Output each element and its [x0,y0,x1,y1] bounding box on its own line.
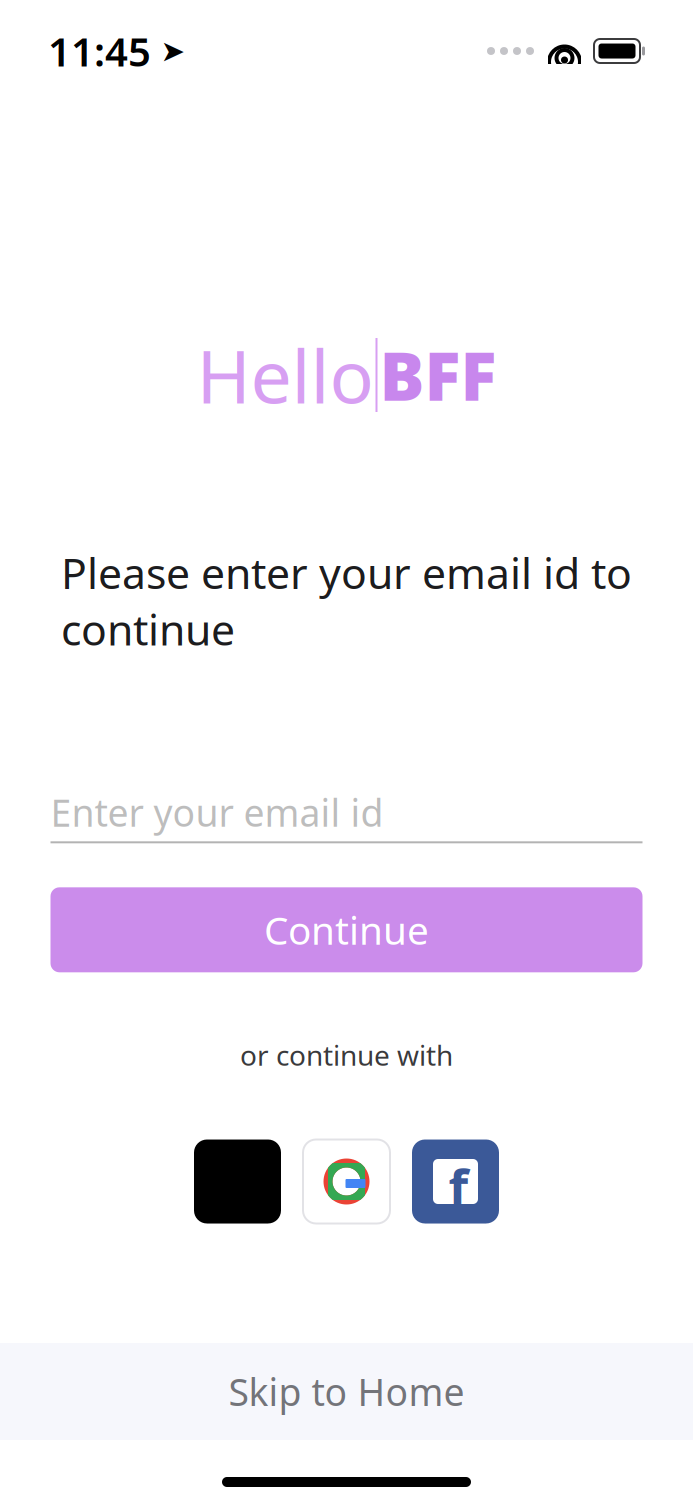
staticText: Enter your email id [50,787,383,837]
button[interactable]: Continue with Google [303,1139,390,1223]
staticText: Please enter your email id to continue [61,544,632,657]
button[interactable]: Skip to Home [0,1343,693,1440]
staticText: ➤ [160,34,185,68]
staticText: Skip to Home [228,1367,464,1416]
staticText: f [448,1153,468,1220]
staticText: Hello [196,326,373,424]
button[interactable]: Continue with Apple [194,1139,281,1223]
staticText: Continue [264,904,429,955]
staticText: or continue with [240,1036,453,1073]
button[interactable]: Continue with Facebook [412,1139,499,1223]
staticText: 11:45 [48,24,151,77]
staticText: BFF [379,331,496,419]
button[interactable]: Continue [50,887,642,972]
